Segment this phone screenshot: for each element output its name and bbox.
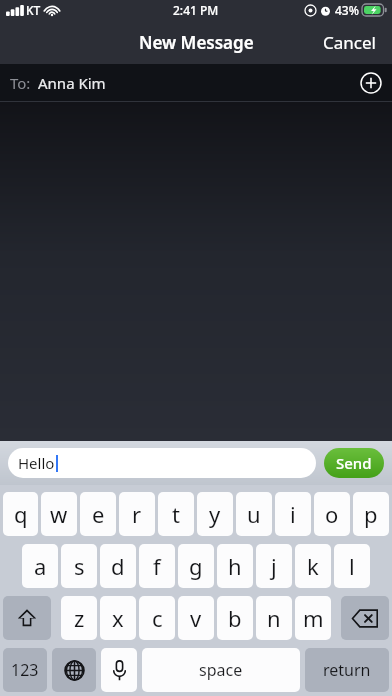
staticText: j [271,551,277,581]
button[interactable]: l [334,544,370,588]
staticText: KT [26,2,41,18]
staticText: New Message [139,31,254,54]
staticText: c [152,603,163,633]
staticText: o [325,499,339,529]
staticText: x [112,603,124,633]
staticText: r [132,499,142,529]
button[interactable]: Change keyboard language [52,648,96,692]
staticText: i [290,499,296,529]
staticText: n [267,603,281,633]
button[interactable]: x [100,596,136,640]
button[interactable]: e [80,492,116,536]
staticText: 2:41 PM [173,2,219,18]
staticText: v [190,603,202,633]
button[interactable]: v [178,596,214,640]
staticText: Hello [18,453,55,473]
staticText: f [153,551,161,581]
staticText: Cancel [323,31,376,54]
button[interactable]: Send [324,448,384,478]
button[interactable]: g [178,544,214,588]
staticText: Send [336,453,372,473]
staticText: k [307,551,319,581]
staticText: z [74,603,85,633]
staticText: space [199,659,243,681]
button[interactable]: k [295,544,331,588]
button[interactable]: Shift [3,596,51,640]
staticText: p [364,499,378,529]
staticText: b [228,603,242,633]
button[interactable]: Cancel [307,21,392,64]
button[interactable]: Add contact [360,72,382,94]
staticText: m [303,603,324,633]
staticText: q [14,499,28,529]
staticText: w [50,499,68,529]
staticText: 43% [335,2,359,18]
button[interactable]: r [119,492,155,536]
button[interactable]: space [142,648,300,692]
button[interactable]: s [61,544,97,588]
button[interactable]: o [314,492,350,536]
button[interactable]: a [22,544,58,588]
staticText: 123 [11,659,39,681]
staticText: Anna Kim [38,73,106,93]
staticText: u [247,499,261,529]
staticText: return [323,659,371,681]
staticText: y [209,499,221,529]
button[interactable]: Hello [8,448,316,478]
staticText: t [172,499,180,529]
staticText: l [349,551,355,581]
button[interactable]: f [139,544,175,588]
button[interactable]: z [61,596,97,640]
button[interactable]: Dictate [101,648,137,692]
button[interactable]: h [217,544,253,588]
button[interactable]: To: [0,64,392,102]
button[interactable]: t [158,492,194,536]
button[interactable]: b [217,596,253,640]
staticText: To: [10,73,31,93]
button[interactable]: q [3,492,38,536]
button[interactable]: w [41,492,77,536]
staticText: e [92,499,105,529]
staticText: a [34,551,47,581]
staticText: s [74,551,85,581]
button[interactable]: j [256,544,292,588]
staticText: d [111,551,125,581]
staticText: g [189,551,203,581]
button[interactable]: u [236,492,272,536]
button[interactable]: d [100,544,136,588]
button[interactable]: y [197,492,233,536]
button[interactable]: n [256,596,292,640]
staticText: h [228,551,242,581]
button[interactable]: m [295,596,331,640]
button[interactable]: 123 [3,648,47,692]
button[interactable]: return [305,648,389,692]
button[interactable]: Backspace [341,596,389,640]
button[interactable]: i [275,492,311,536]
button[interactable]: c [139,596,175,640]
button[interactable]: p [353,492,389,536]
